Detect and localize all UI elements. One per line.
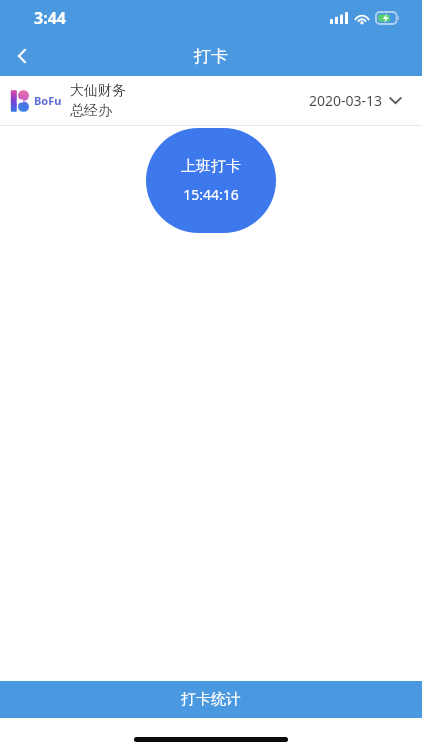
- button[interactable]: 上班打卡: [146, 128, 276, 233]
- button[interactable]: 打卡统计: [0, 681, 422, 718]
- staticText: 上班打卡: [181, 157, 241, 176]
- staticText: 3:44: [34, 7, 66, 29]
- staticText: 15:44:16: [183, 185, 239, 204]
- staticText: BoFu: [34, 93, 62, 108]
- button[interactable]: 2020-03-13: [301, 85, 410, 116]
- staticText: 大仙财务: [70, 82, 126, 100]
- staticText: 打卡统计: [181, 690, 241, 709]
- staticText: 总经办: [70, 102, 112, 120]
- button[interactable]: BoFu: [0, 76, 422, 125]
- staticText: 2020-03-13: [309, 91, 383, 110]
- button[interactable]: Back: [0, 36, 44, 76]
- staticText: 打卡: [194, 46, 228, 67]
